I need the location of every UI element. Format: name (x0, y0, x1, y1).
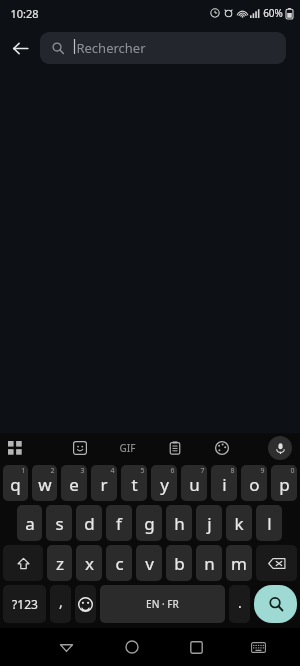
staticText: b (174, 552, 185, 575)
button[interactable]: 0 (271, 465, 297, 501)
staticText: h (174, 512, 185, 535)
staticText: v (145, 552, 154, 575)
staticText: p (279, 473, 290, 496)
button[interactable]: x (76, 545, 102, 581)
staticText: . (238, 593, 242, 612)
button[interactable]: Backspace (256, 545, 297, 581)
button[interactable]: c (106, 545, 132, 581)
staticText: w (38, 473, 52, 496)
staticText: 6 (170, 466, 175, 476)
staticText: y (160, 473, 169, 496)
button[interactable]: 9 (241, 465, 267, 501)
button[interactable]: Themes (198, 433, 245, 463)
button[interactable]: Clipboard (151, 433, 198, 463)
button[interactable]: Back (0, 28, 40, 68)
button[interactable]: 7 (181, 465, 207, 501)
staticText: GIF (119, 441, 136, 455)
staticText: k (234, 512, 244, 535)
staticText: 10:28 (10, 6, 39, 21)
button[interactable]: 8 (211, 465, 237, 501)
staticText: f (116, 512, 122, 535)
button[interactable]: m (226, 545, 252, 581)
button[interactable]: Apps (8, 433, 56, 463)
staticText: e (69, 473, 79, 496)
staticText: 8 (230, 466, 235, 476)
staticText: u (189, 473, 200, 496)
button[interactable]: Shift (3, 545, 43, 581)
staticText: d (84, 512, 95, 535)
staticText: o (249, 473, 260, 496)
staticText: j (207, 512, 212, 535)
button[interactable]: 4 (91, 465, 117, 501)
button[interactable]: Rechercher (40, 32, 286, 64)
staticText: 0 (290, 466, 295, 476)
button[interactable]: j (196, 505, 222, 541)
staticText: n (204, 552, 215, 575)
button[interactable]: f (106, 505, 132, 541)
button[interactable]: g (136, 505, 162, 541)
button[interactable]: 3 (61, 465, 87, 501)
button[interactable]: z (47, 545, 72, 581)
staticText: Rechercher (76, 39, 146, 57)
staticText: z (56, 552, 64, 575)
button[interactable]: . (229, 585, 250, 623)
staticText: 4 (110, 466, 115, 476)
button[interactable]: EN · FR (100, 585, 225, 623)
button[interactable]: 6 (151, 465, 177, 501)
staticText: g (144, 512, 155, 535)
staticText: ?123 (12, 596, 38, 612)
staticText: x (85, 552, 94, 575)
button[interactable]: ?123 (3, 585, 46, 623)
button[interactable]: a (17, 505, 42, 541)
staticText: , (59, 592, 63, 611)
button[interactable]: Back (34, 628, 99, 666)
staticText: 9 (260, 466, 265, 476)
staticText: i (222, 473, 227, 496)
button[interactable]: b (166, 545, 192, 581)
staticText: t (131, 473, 138, 496)
staticText: 60% (263, 6, 283, 20)
button[interactable]: Hide keyboard (229, 628, 287, 666)
button[interactable]: , (50, 585, 71, 623)
button[interactable]: n (196, 545, 222, 581)
button[interactable]: k (226, 505, 252, 541)
button[interactable]: l (256, 505, 282, 541)
button[interactable]: s (46, 505, 72, 541)
button[interactable]: h (166, 505, 192, 541)
button[interactable]: v (136, 545, 162, 581)
button[interactable]: GIF (104, 433, 151, 463)
staticText: r (100, 473, 108, 496)
button[interactable]: d (76, 505, 102, 541)
staticText: m (231, 552, 247, 575)
button[interactable]: 1 (3, 465, 28, 501)
button[interactable]: Home (99, 628, 164, 666)
staticText: s (55, 512, 64, 535)
staticText: 2 (50, 466, 55, 476)
button[interactable]: 2 (32, 465, 57, 501)
staticText: a (25, 512, 35, 535)
button[interactable]: Emoji (75, 585, 96, 623)
button[interactable]: Voice input (245, 433, 292, 463)
staticText: 7 (200, 466, 205, 476)
button[interactable]: Search (254, 585, 297, 623)
button[interactable]: 5 (121, 465, 147, 501)
staticText: 5 (140, 466, 145, 476)
staticText: q (10, 473, 21, 496)
staticText: 1 (21, 466, 26, 476)
staticText: l (267, 512, 272, 535)
staticText: 3 (80, 466, 85, 476)
button[interactable]: Recents (164, 628, 229, 666)
staticText: c (115, 552, 124, 575)
button[interactable]: Stickers (56, 433, 104, 463)
staticText: EN · FR (146, 597, 179, 611)
